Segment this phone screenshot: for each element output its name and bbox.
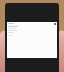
button[interactable]	[7, 31, 57, 33]
button[interactable]: More options	[7, 22, 57, 25]
button[interactable]	[7, 25, 57, 27]
button[interactable]	[7, 34, 57, 36]
button[interactable]	[7, 27, 57, 29]
button[interactable]	[7, 29, 57, 31]
